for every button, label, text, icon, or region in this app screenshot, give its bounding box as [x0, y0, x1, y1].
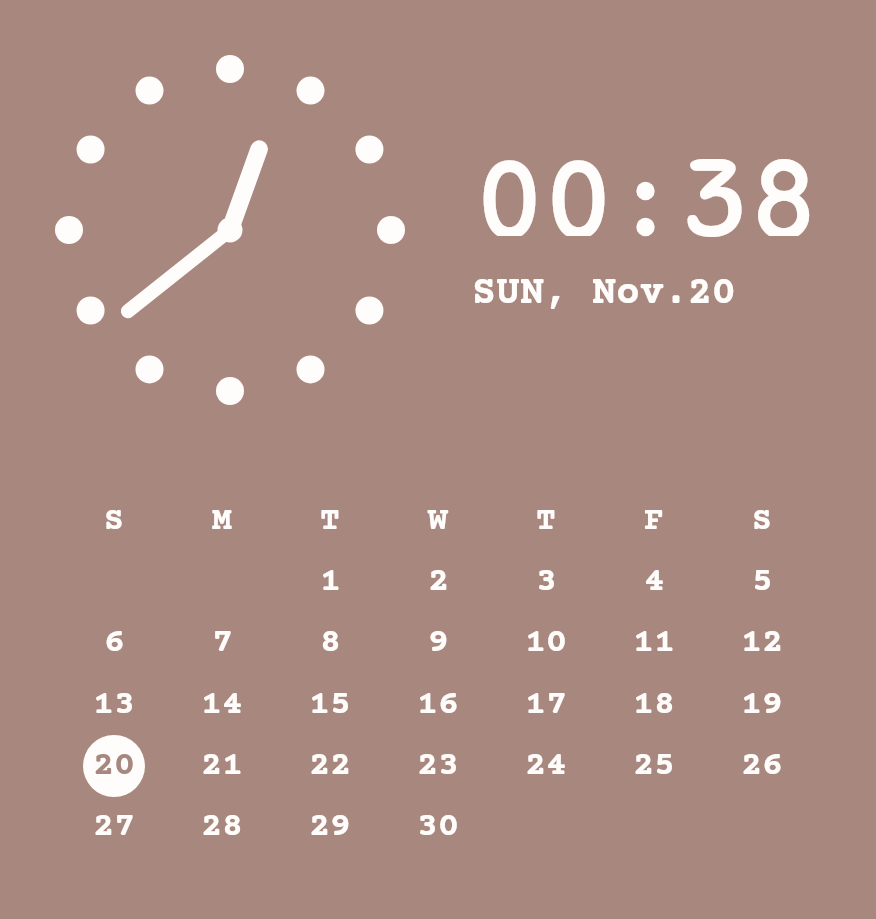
button[interactable]: 10 — [515, 612, 577, 674]
staticText: 5 — [752, 563, 773, 602]
button[interactable]: 14 — [191, 674, 253, 736]
button[interactable]: 30 — [407, 796, 469, 858]
staticText: 10 — [525, 624, 567, 663]
staticText: T — [320, 503, 340, 540]
button[interactable]: 13 — [83, 674, 145, 736]
staticText: 26 — [741, 747, 783, 786]
button[interactable]: 7 — [191, 612, 253, 674]
button[interactable]: 21 — [191, 735, 253, 797]
staticText: 0 — [479, 128, 540, 236]
staticText: 13 — [93, 686, 135, 725]
staticText: 8 — [755, 128, 816, 236]
staticText: 14 — [201, 686, 243, 725]
button[interactable]: M — [191, 490, 253, 552]
button[interactable]: Analog clock — [55, 54, 405, 406]
staticText: 22 — [309, 747, 351, 786]
staticText: 15 — [309, 686, 351, 725]
staticText: 8 — [320, 624, 341, 663]
button[interactable]: 2 — [407, 551, 469, 613]
button[interactable]: 25 — [623, 735, 685, 797]
button[interactable]: 12 — [731, 612, 793, 674]
staticText: 4 — [644, 563, 665, 602]
button[interactable]: T — [299, 490, 361, 552]
button[interactable]: 11 — [623, 612, 685, 674]
button[interactable]: 27 — [83, 796, 145, 858]
staticText: 27 — [93, 808, 135, 847]
staticText: F — [644, 503, 664, 540]
button[interactable]: 18 — [623, 674, 685, 736]
staticText: 11 — [633, 624, 675, 663]
staticText: 20 — [93, 747, 135, 786]
button[interactable]: 22 — [299, 735, 361, 797]
button[interactable]: 5 — [731, 551, 793, 613]
button[interactable]: 3 — [515, 551, 577, 613]
staticText: 1 — [320, 563, 341, 602]
button[interactable]: 16 — [407, 674, 469, 736]
button[interactable]: T — [515, 490, 577, 552]
staticText: 18 — [633, 686, 675, 725]
staticText: T — [536, 503, 556, 540]
staticText: 9 — [428, 624, 449, 663]
staticText: 2 — [428, 563, 449, 602]
button[interactable]: SUN, Nov.20 — [472, 272, 736, 317]
button[interactable]: 28 — [191, 796, 253, 858]
staticText: 3 — [683, 132, 747, 240]
button[interactable]: 24 — [515, 735, 577, 797]
button[interactable]: 19 — [731, 674, 793, 736]
staticText: 19 — [741, 686, 783, 725]
staticText: 6 — [104, 624, 125, 663]
staticText: 21 — [201, 747, 243, 786]
button[interactable]: 4 — [623, 551, 685, 613]
button[interactable]: 17 — [515, 674, 577, 736]
staticText: 28 — [201, 808, 243, 847]
button[interactable]: S — [731, 490, 793, 552]
staticText: 3 — [536, 563, 557, 602]
staticText: 7 — [212, 624, 233, 663]
staticText: 30 — [417, 808, 459, 847]
staticText: M — [212, 503, 232, 540]
staticText: 29 — [309, 808, 351, 847]
staticText: S — [752, 503, 772, 540]
button[interactable]: W — [407, 490, 469, 552]
button[interactable]: 23 — [407, 735, 469, 797]
button[interactable]: 26 — [731, 735, 793, 797]
staticText: 25 — [633, 747, 675, 786]
button[interactable]: 1 — [299, 551, 361, 613]
button[interactable]: F — [623, 490, 685, 552]
staticText: 23 — [417, 747, 459, 786]
button[interactable]: 9 — [407, 612, 469, 674]
staticText: 12 — [741, 624, 783, 663]
staticText: 0 — [548, 128, 609, 236]
button[interactable]: 20 — [83, 735, 145, 797]
button[interactable]: 6 — [83, 612, 145, 674]
button[interactable]: 0 — [475, 128, 820, 236]
staticText: 24 — [525, 747, 567, 786]
staticText: 16 — [417, 686, 459, 725]
button[interactable]: S — [83, 490, 145, 552]
button[interactable]: 29 — [299, 796, 361, 858]
staticText: S — [104, 503, 124, 540]
button[interactable]: 15 — [299, 674, 361, 736]
staticText: 17 — [525, 686, 567, 725]
staticText: W — [428, 503, 448, 540]
button[interactable]: 8 — [299, 612, 361, 674]
